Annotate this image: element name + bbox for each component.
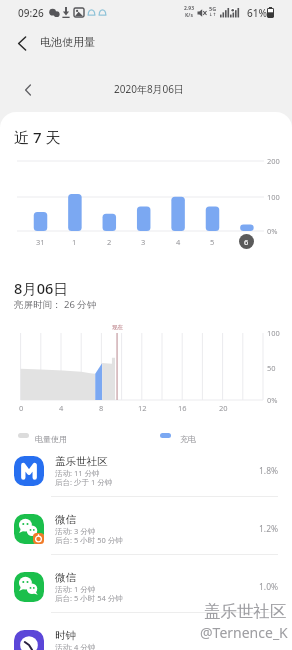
staticText: 微信 xyxy=(55,513,76,526)
staticText: 2020年8月06日 xyxy=(114,82,185,96)
staticText: 活动: 11 分钟 xyxy=(55,468,100,478)
staticText: 09:26 xyxy=(18,6,44,20)
staticText: 1.0% xyxy=(259,581,279,593)
staticText: 12 xyxy=(138,403,147,413)
staticText: 电量使用 xyxy=(35,434,67,444)
staticText: 16 xyxy=(178,403,187,413)
staticText: 50 xyxy=(267,363,276,373)
staticText: 4 xyxy=(59,403,64,413)
staticText: 后台: 5 小时 50 分钟 xyxy=(55,535,123,545)
staticText: 活动: 3 分钟 xyxy=(55,526,96,536)
staticText: 微信 xyxy=(55,571,76,584)
staticText: 5 xyxy=(210,237,215,247)
staticText: 1.2% xyxy=(259,523,279,535)
staticText: 31 xyxy=(36,237,45,247)
staticText: 5G xyxy=(209,5,217,12)
staticText: 充电 xyxy=(180,434,196,444)
button[interactable]: 时钟 xyxy=(0,613,292,650)
button[interactable]: 盖乐世社区 xyxy=(0,439,292,496)
staticText: 8月06日 xyxy=(14,278,68,298)
staticText: 0% xyxy=(267,395,278,405)
staticText: ↓↑ xyxy=(209,12,217,17)
button[interactable]: Previous day xyxy=(16,78,40,102)
staticText: 后台: 少于 1 分钟 xyxy=(55,477,113,487)
staticText: 0% xyxy=(267,226,278,236)
staticText: 100 xyxy=(267,328,280,338)
staticText: @Ternence_K xyxy=(200,623,288,642)
staticText: 2.93 xyxy=(184,5,194,12)
staticText: 100 xyxy=(267,192,280,202)
staticText: 61% xyxy=(247,6,267,20)
staticText: 活动: 4 分钟 xyxy=(55,642,96,650)
staticText: 3 xyxy=(141,237,146,247)
button[interactable]: 微信 xyxy=(0,555,292,612)
staticText: 电池使用量 xyxy=(40,35,95,49)
staticText: 盖乐世社区 xyxy=(55,455,108,468)
staticText: 1 xyxy=(72,237,77,247)
staticText: 后台: 5 小时 54 分钟 xyxy=(55,593,123,603)
staticText: 盖乐世社区 xyxy=(204,601,287,622)
staticText: 6 xyxy=(244,237,249,247)
staticText: 1.8% xyxy=(259,465,279,477)
staticText: 2 xyxy=(107,237,112,247)
staticText: 0 xyxy=(19,403,24,413)
button[interactable]: Back xyxy=(9,30,35,56)
staticText: 8 xyxy=(99,403,104,413)
staticText: 现在 xyxy=(112,324,123,331)
staticText: 近 7 天 xyxy=(14,127,61,147)
staticText: 4 xyxy=(176,237,181,247)
staticText: K/s xyxy=(185,12,193,19)
staticText: 200 xyxy=(267,156,280,166)
staticText: 亮屏时间： 26 分钟 xyxy=(14,298,97,311)
staticText: 时钟 xyxy=(55,629,76,642)
staticText: 活动: 1 分钟 xyxy=(55,584,96,594)
staticText: 20 xyxy=(219,403,228,413)
button[interactable]: 微信 xyxy=(0,497,292,554)
